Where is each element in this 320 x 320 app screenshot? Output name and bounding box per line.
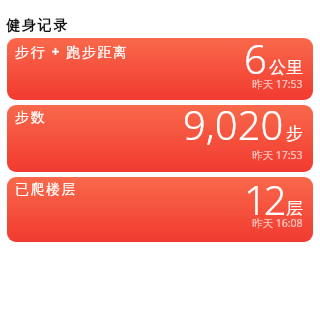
staticText: 已爬楼层 [15, 181, 78, 199]
staticText: 12 [244, 177, 284, 226]
button[interactable]: 步数 [7, 105, 313, 172]
staticText: 公里 [269, 57, 303, 78]
staticText: 昨天 16:08 [252, 216, 303, 230]
staticText: 昨天 17:53 [252, 148, 303, 162]
staticText: 6 [244, 38, 267, 85]
staticText: 昨天 17:53 [252, 77, 303, 91]
staticText: 步 [286, 123, 303, 144]
staticText: 层 [286, 198, 303, 219]
button[interactable]: 步行 + 跑步距离 [7, 38, 313, 100]
staticText: 健身记录 [6, 17, 70, 35]
staticText: 9,020 [183, 105, 284, 151]
button[interactable]: 已爬楼层 [7, 177, 313, 242]
staticText: 步数 [15, 109, 47, 127]
staticText: 步行 + 跑步距离 [15, 42, 129, 61]
